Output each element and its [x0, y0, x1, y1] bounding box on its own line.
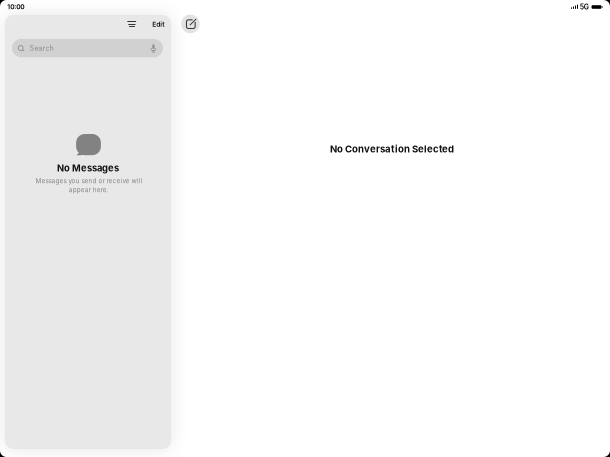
staticText: 10:00	[7, 3, 24, 11]
staticText: Messages you send or receive will	[35, 177, 142, 185]
button[interactable]: Search	[12, 39, 163, 57]
button[interactable]: Edit	[147, 17, 169, 31]
staticText: No Messages	[57, 163, 119, 174]
button[interactable]: New Message	[181, 15, 200, 33]
staticText: Edit	[152, 20, 164, 28]
staticText: appear here.	[69, 186, 109, 194]
staticText: No Conversation Selected	[330, 143, 454, 155]
staticText: 5G	[580, 3, 589, 11]
button[interactable]: Filter conversations	[124, 17, 140, 31]
staticText: Search	[29, 44, 53, 52]
